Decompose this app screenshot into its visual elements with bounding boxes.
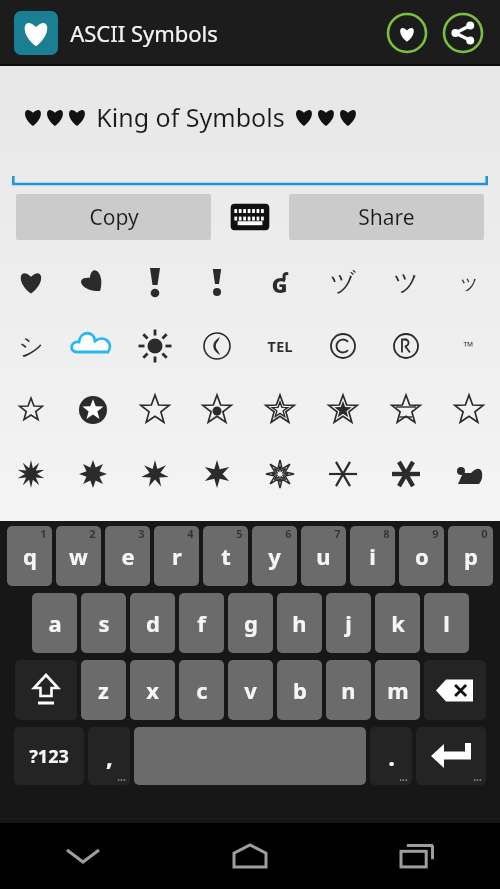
staticText: ツ [393,267,419,298]
button[interactable]: King of Symbols [12,66,488,188]
button[interactable]: Sparkle [248,442,311,506]
button[interactable]: Exclamation [186,250,248,314]
button[interactable]: Heart [0,250,62,314]
staticText: e [121,541,135,571]
button[interactable]: ʛ [248,250,311,314]
button[interactable]: j [326,593,371,653]
button[interactable]: . [370,727,412,785]
button[interactable]: シ [0,314,62,378]
button[interactable]: k [375,593,420,653]
button[interactable]: Keyboard [211,188,289,246]
staticText: ASCII Symbols [70,18,218,48]
button[interactable]: ッ [437,250,500,314]
button[interactable]: Backspace [424,660,486,720]
staticText: 7 [334,526,341,541]
staticText: q [23,541,37,571]
button[interactable]: v [228,660,273,720]
button[interactable]: a [32,593,77,653]
staticText: 4 [187,526,194,541]
button[interactable]: r [154,526,199,586]
staticText: n [341,675,356,705]
staticText: 2 [89,526,96,541]
button[interactable]: Sparkle [186,442,248,506]
button[interactable]: l [424,593,469,653]
button[interactable]: w [56,526,101,586]
staticText: ?123 [29,744,69,769]
button[interactable]: d [130,593,175,653]
button[interactable]: Recent apps [333,823,500,889]
button[interactable]: Copy [16,194,211,240]
staticText: 1 [40,526,47,541]
button[interactable]: y [252,526,297,586]
button[interactable]: Sun [124,314,186,378]
button[interactable]: Star [437,378,500,442]
button[interactable]: ™ [437,314,500,378]
button[interactable]: Star [248,378,311,442]
staticText: Copy [89,203,139,232]
staticText: h [292,608,307,638]
button[interactable]: Tilted heart [62,250,124,314]
button[interactable]: Phone [186,314,248,378]
button[interactable]: q [7,526,52,586]
button[interactable]: Star in circle [62,378,124,442]
button[interactable]: , [88,727,130,785]
button[interactable]: Share [289,194,484,240]
button[interactable]: u [301,526,346,586]
button[interactable]: h [277,593,322,653]
staticText: o [415,541,429,571]
button[interactable]: x [130,660,175,720]
button[interactable]: ツ [374,250,437,314]
staticText: f [197,608,206,638]
button[interactable]: m [375,660,420,720]
button[interactable]: o [399,526,444,586]
button[interactable]: Sparkle [62,442,124,506]
button[interactable]: Asterisk [374,442,437,506]
button[interactable]: Enter [416,727,486,785]
button[interactable]: Favorite [384,10,430,56]
button[interactable]: c [179,660,224,720]
button[interactable]: t [203,526,248,586]
button[interactable]: Registered [374,314,437,378]
button[interactable]: Space [134,727,366,785]
button[interactable]: Star [124,378,186,442]
staticText: w [69,541,88,571]
staticText: d [146,608,160,638]
button[interactable]: Cloud [62,314,124,378]
staticText: 3 [138,526,145,541]
button[interactable]: Asterisk [311,442,374,506]
button[interactable]: g [228,593,273,653]
staticText: ... [117,770,126,784]
button[interactable]: ?123 [14,727,84,785]
button[interactable]: Sparkle [124,442,186,506]
staticText: b [293,675,307,705]
button[interactable]: p [448,526,493,586]
button[interactable]: Shift [15,660,77,720]
button[interactable]: i [350,526,395,586]
button[interactable]: n [326,660,371,720]
staticText: King of Symbols [96,100,285,134]
button[interactable]: Home [166,823,333,889]
button[interactable]: f [179,593,224,653]
staticText: a [48,608,62,638]
button[interactable]: z [81,660,126,720]
button[interactable]: Share [440,10,486,56]
button[interactable]: Star [0,378,62,442]
staticText: j [345,608,352,638]
button[interactable]: b [277,660,322,720]
button[interactable]: e [105,526,150,586]
button[interactable]: Sparkle [0,442,62,506]
button[interactable]: Exclamation [124,250,186,314]
button[interactable]: Figure [437,442,500,506]
staticText: TEL [267,336,293,356]
staticText: 8 [383,526,390,541]
button[interactable]: s [81,593,126,653]
button[interactable]: TEL [248,314,311,378]
button[interactable]: Hide keyboard [0,823,166,889]
staticText: , [106,740,113,773]
button[interactable]: ヅ [311,250,374,314]
button[interactable]: Copyright [311,314,374,378]
button[interactable]: App icon [14,11,58,55]
button[interactable]: Star [374,378,437,442]
button[interactable]: Star [186,378,248,442]
button[interactable]: Star [311,378,374,442]
